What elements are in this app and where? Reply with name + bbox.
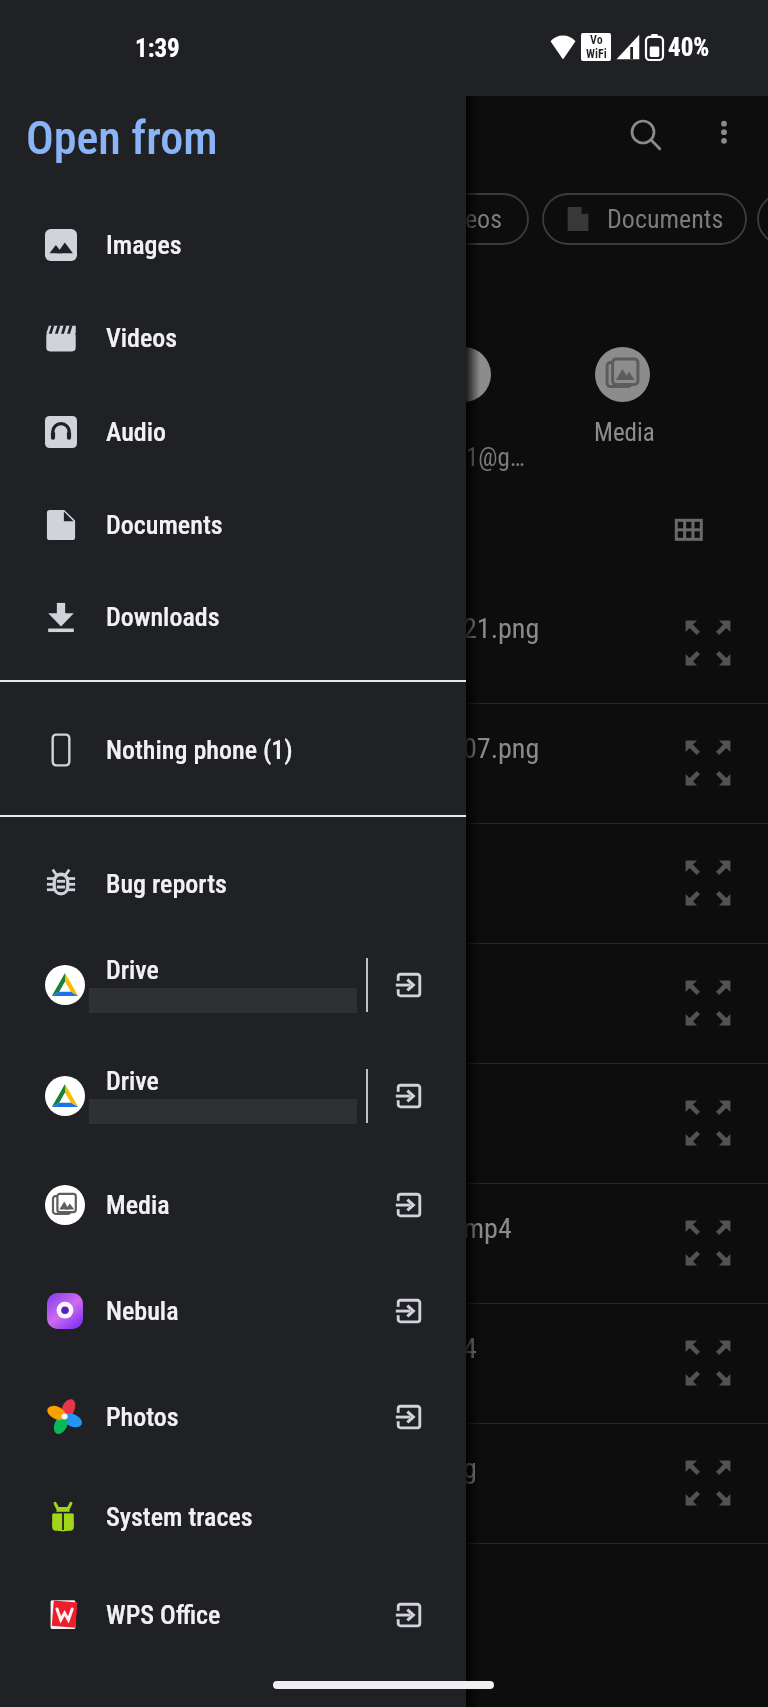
button[interactable]: 21.png bbox=[0, 584, 768, 704]
staticText: deos bbox=[452, 204, 502, 234]
button[interactable]: More options bbox=[702, 110, 746, 154]
button[interactable]: Open WPS Office bbox=[394, 1600, 424, 1630]
staticText: WiFi bbox=[586, 47, 607, 61]
staticText: 1@g… bbox=[466, 443, 525, 472]
button[interactable]: Drive bbox=[0, 1049, 466, 1142]
staticText: Images bbox=[106, 230, 182, 260]
staticText: Documents bbox=[106, 510, 223, 540]
staticText: 07.png bbox=[463, 732, 540, 765]
button[interactable]: Documents bbox=[543, 194, 746, 244]
button[interactable]: Search bbox=[621, 110, 665, 154]
staticText: Media bbox=[594, 418, 655, 447]
staticText: Drive bbox=[106, 955, 159, 985]
staticText: Vo bbox=[590, 33, 603, 47]
staticText: Audio bbox=[106, 417, 166, 447]
staticText: System traces bbox=[106, 1502, 253, 1532]
button[interactable]: Bug reports bbox=[0, 837, 466, 930]
button[interactable]: deos bbox=[390, 194, 528, 244]
button[interactable]: g bbox=[0, 1424, 768, 1544]
staticText: Videos bbox=[106, 323, 178, 353]
button[interactable]: Videos bbox=[0, 291, 466, 384]
staticText: mp4 bbox=[463, 1212, 512, 1245]
button[interactable]: Open Media bbox=[394, 1190, 424, 1220]
staticText: 21.png bbox=[463, 612, 540, 645]
button[interactable]: Downloads bbox=[0, 570, 466, 663]
staticText: Open from bbox=[26, 111, 218, 165]
staticText: 1:39 bbox=[135, 34, 180, 63]
staticText: Nothing phone (1) bbox=[106, 735, 293, 765]
button[interactable]: Open Nebula bbox=[394, 1296, 424, 1326]
button[interactable]: System traces bbox=[0, 1470, 466, 1563]
button[interactable]: Grid view bbox=[664, 508, 704, 548]
button[interactable]: Photos bbox=[0, 1370, 466, 1463]
staticText: Photos bbox=[106, 1402, 179, 1432]
button[interactable]: Media bbox=[595, 347, 650, 402]
staticText: Documents bbox=[607, 204, 724, 234]
button[interactable]: Media bbox=[0, 1158, 466, 1251]
staticText: Media bbox=[106, 1190, 170, 1220]
button[interactable]: 4 bbox=[0, 1304, 768, 1424]
button[interactable]: Nothing phone (1) bbox=[0, 703, 466, 796]
button[interactable]: 07.png bbox=[0, 704, 768, 824]
staticText: Nebula bbox=[106, 1296, 179, 1326]
staticText: Downloads bbox=[106, 602, 220, 632]
button[interactable]: Drive bbox=[0, 938, 466, 1031]
staticText: g bbox=[463, 1452, 477, 1485]
staticText: Bug reports bbox=[106, 869, 227, 899]
button[interactable]: WPS Office bbox=[0, 1568, 466, 1661]
button[interactable]: mp4 bbox=[0, 1184, 768, 1304]
button[interactable]: Open Photos bbox=[394, 1402, 424, 1432]
button[interactable] bbox=[0, 824, 768, 944]
button[interactable]: Audio bbox=[0, 385, 466, 478]
button[interactable]: Nebula bbox=[0, 1264, 466, 1357]
staticText: Drive bbox=[106, 1066, 159, 1096]
button[interactable]: Images bbox=[0, 198, 466, 291]
button[interactable]: Documents bbox=[0, 478, 466, 571]
button[interactable] bbox=[0, 944, 768, 1064]
staticText: 4 bbox=[463, 1332, 477, 1365]
staticText: 40% bbox=[668, 33, 710, 62]
button[interactable] bbox=[0, 1064, 768, 1184]
button[interactable]: Open Drive bbox=[394, 970, 424, 1000]
button[interactable]: Open Drive bbox=[394, 1081, 424, 1111]
staticText: WPS Office bbox=[106, 1600, 221, 1630]
